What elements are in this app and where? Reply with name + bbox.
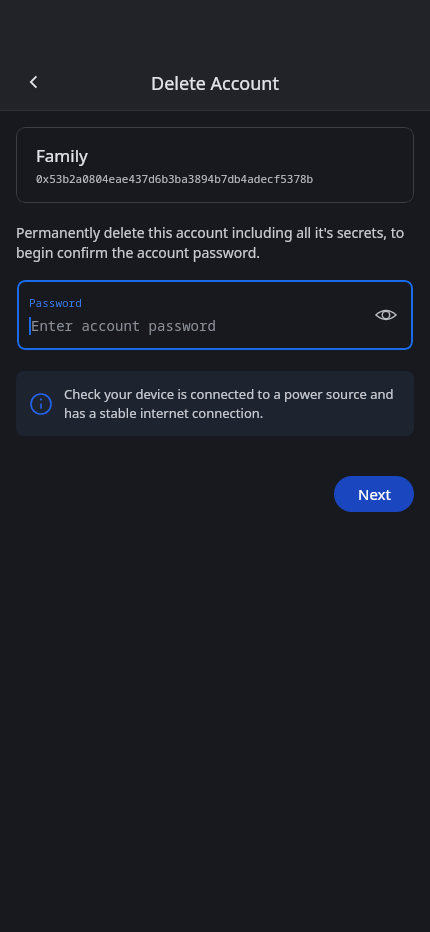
staticText: Delete Account — [151, 71, 279, 96]
button[interactable]: Password — [17, 280, 413, 350]
staticText: Enter account password — [31, 316, 216, 335]
button[interactable]: Show password — [369, 298, 403, 332]
button[interactable]: Family — [16, 127, 414, 203]
staticText: Family — [36, 144, 88, 167]
button[interactable]: Next — [334, 476, 414, 512]
staticText: Permanently delete this account includin… — [16, 223, 414, 262]
staticText: Password — [29, 295, 82, 310]
button[interactable]: Back — [14, 62, 54, 102]
staticText: Next — [358, 484, 391, 504]
staticText: Check your device is connected to a powe… — [64, 385, 400, 422]
button[interactable]: Check your device is connected to a powe… — [16, 371, 414, 436]
staticText: 0x53b2a0804eae437d6b3ba3894b7db4adecf537… — [36, 171, 314, 186]
